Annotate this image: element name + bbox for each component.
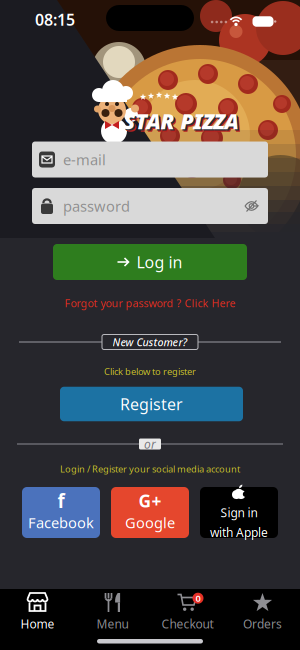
staticText: Sign in bbox=[220, 505, 257, 520]
staticText: Register bbox=[120, 393, 183, 415]
staticText: Orders bbox=[243, 616, 282, 632]
button[interactable]: Forgot your password ? Click Here bbox=[64, 296, 235, 310]
staticText: Click below to register bbox=[104, 365, 196, 378]
staticText: 08:15 bbox=[35, 9, 75, 30]
staticText: f bbox=[57, 488, 64, 513]
button[interactable]: Home bbox=[0, 593, 75, 632]
staticText: Menu bbox=[96, 616, 128, 632]
staticText: STAR PIZZA bbox=[126, 109, 241, 138]
staticText: Login / Register your social media accou… bbox=[60, 463, 240, 475]
staticText: password bbox=[63, 196, 130, 216]
button[interactable]: f bbox=[22, 487, 100, 538]
staticText: Forgot your password ? Click Here bbox=[64, 296, 235, 310]
button[interactable]: G+ bbox=[111, 487, 189, 538]
button[interactable]: Menu bbox=[75, 593, 150, 632]
staticText: with Apple bbox=[210, 524, 268, 540]
staticText: Log in bbox=[136, 251, 182, 273]
staticText: G+ bbox=[138, 489, 161, 512]
button[interactable]: Orders bbox=[225, 593, 300, 632]
staticText: STAR PIZZA bbox=[125, 108, 240, 136]
staticText: Google bbox=[125, 513, 175, 532]
staticText: Home bbox=[20, 616, 54, 632]
staticText: or bbox=[144, 436, 156, 452]
button[interactable]: 0 bbox=[150, 593, 225, 632]
staticText: Checkout bbox=[161, 616, 213, 632]
button[interactable]: Register bbox=[60, 387, 243, 421]
staticText: STAR PIZZA bbox=[123, 107, 238, 135]
button[interactable]: Sign in bbox=[200, 485, 278, 540]
staticText: Facebook bbox=[28, 513, 94, 532]
staticText: 0 bbox=[195, 592, 200, 604]
button[interactable]: Show password bbox=[245, 201, 258, 211]
staticText: e-mail bbox=[63, 150, 106, 169]
button[interactable]: Log in bbox=[53, 244, 247, 280]
staticText: New Customer? bbox=[112, 335, 187, 349]
